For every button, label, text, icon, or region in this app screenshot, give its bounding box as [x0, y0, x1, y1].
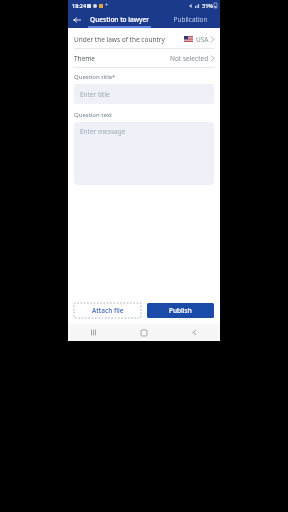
button[interactable]: Back	[169, 324, 220, 341]
staticText: Attach file	[92, 306, 124, 315]
staticText: Publication	[173, 15, 208, 24]
staticText: 18:24	[72, 2, 87, 9]
button[interactable]: Enter title	[74, 84, 214, 104]
staticText: 31%	[202, 2, 213, 9]
button[interactable]: Enter message	[74, 122, 214, 185]
staticText: +	[105, 2, 108, 9]
button[interactable]: Question to lawyer	[87, 11, 152, 28]
staticText: Question to lawyer	[90, 15, 149, 24]
staticText: USA	[196, 35, 209, 44]
staticText: Not selected	[170, 54, 209, 63]
staticText: Enter message	[80, 127, 126, 136]
button[interactable]: Home	[118, 324, 169, 341]
staticText: Question text	[74, 111, 113, 119]
staticText: Under the laws of the country	[74, 35, 165, 44]
staticText: Publish	[169, 306, 192, 315]
staticText: Theme	[74, 54, 96, 63]
button[interactable]: Back	[68, 11, 86, 28]
staticText: Question title*	[74, 73, 116, 81]
button[interactable]: Publish	[147, 303, 214, 318]
button[interactable]: Attach file	[74, 303, 141, 318]
button[interactable]: Theme	[68, 49, 220, 67]
button[interactable]: Publication	[168, 11, 213, 28]
button[interactable]: Under the laws of the country	[68, 30, 220, 48]
staticText: Enter title	[80, 90, 110, 99]
button[interactable]: Recent apps	[68, 324, 118, 341]
